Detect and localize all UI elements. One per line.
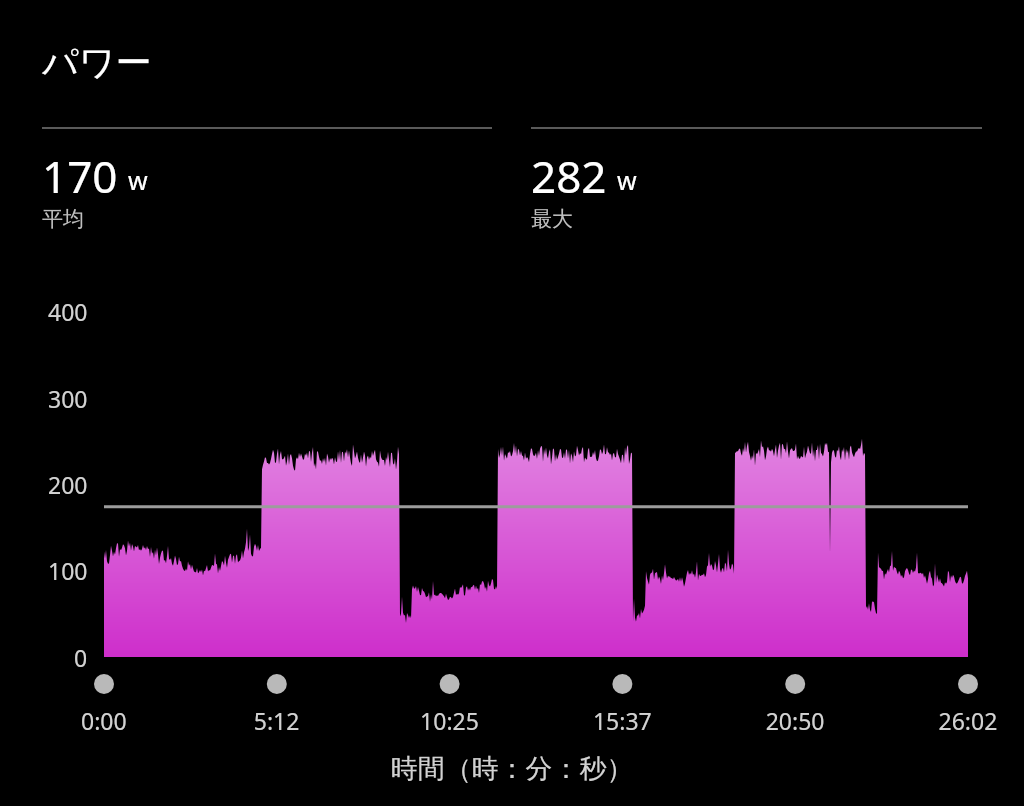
- button[interactable]: パワー グラフ: [0, 0, 1024, 806]
